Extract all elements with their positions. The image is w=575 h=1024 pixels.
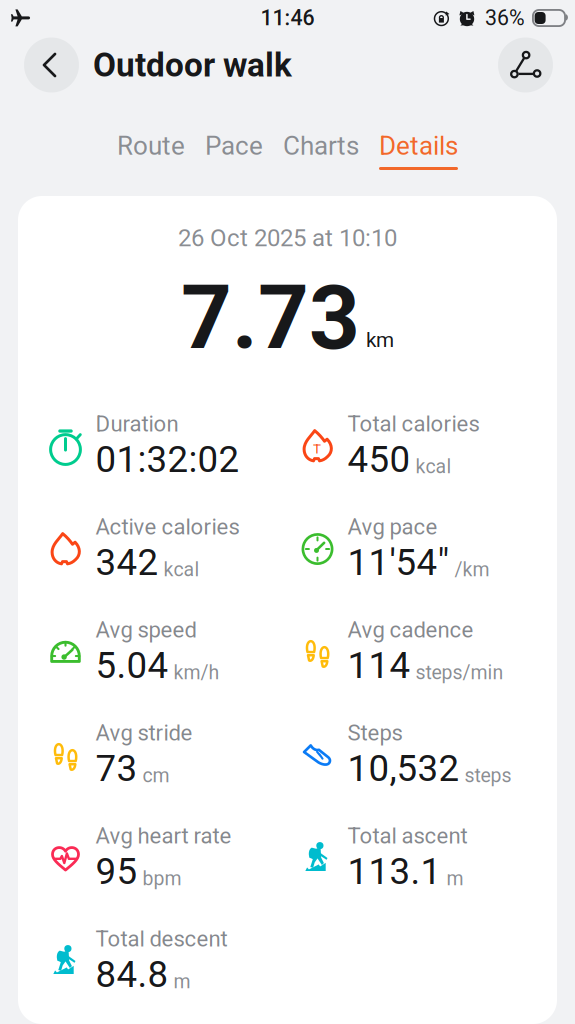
staticText: Steps bbox=[347, 720, 402, 746]
staticText: 7.73 bbox=[181, 266, 360, 370]
staticText: km bbox=[366, 328, 394, 352]
staticText: 95 bbox=[95, 850, 137, 893]
staticText: 113.1 bbox=[347, 850, 441, 893]
staticText: Outdoor walk bbox=[93, 45, 292, 85]
staticText: Total descent bbox=[95, 926, 227, 952]
staticText: steps bbox=[464, 764, 511, 787]
staticText: m bbox=[173, 970, 190, 993]
staticText: km/h bbox=[173, 661, 219, 684]
staticText: Avg stride bbox=[95, 720, 192, 746]
staticText: 5.04 bbox=[95, 644, 168, 687]
staticText: 450 bbox=[347, 438, 410, 481]
staticText: Avg pace bbox=[347, 514, 437, 540]
staticText: /km bbox=[454, 558, 489, 581]
staticText: Charts bbox=[283, 130, 359, 161]
staticText: Total calories bbox=[347, 411, 479, 437]
staticText: Details bbox=[379, 130, 458, 161]
staticText: 11'54" bbox=[347, 541, 449, 584]
button[interactable]: Details bbox=[379, 130, 458, 196]
staticText: Avg speed bbox=[95, 617, 196, 643]
staticText: m bbox=[446, 867, 463, 890]
staticText: Total ascent bbox=[347, 823, 467, 849]
staticText: 10,532 bbox=[347, 747, 459, 790]
button[interactable]: Pace bbox=[205, 130, 263, 196]
staticText: Pace bbox=[205, 130, 263, 161]
staticText: 84.8 bbox=[95, 953, 168, 996]
staticText: steps/min bbox=[415, 661, 503, 684]
button[interactable]: Back bbox=[24, 37, 79, 92]
staticText: 342 bbox=[95, 541, 158, 584]
button[interactable]: Charts bbox=[283, 130, 359, 196]
staticText: Avg cadence bbox=[347, 617, 473, 643]
staticText: 114 bbox=[347, 644, 410, 687]
staticText: Active calories bbox=[95, 514, 239, 540]
staticText: kcal bbox=[163, 558, 199, 581]
staticText: 73 bbox=[95, 747, 137, 790]
staticText: 11:46 bbox=[260, 5, 314, 30]
staticText: cm bbox=[142, 764, 169, 787]
staticText: kcal bbox=[415, 455, 451, 478]
staticText: bpm bbox=[142, 867, 181, 890]
staticText: 01:32:02 bbox=[95, 438, 239, 481]
staticText: Route bbox=[117, 130, 185, 161]
staticText: 36% bbox=[485, 5, 525, 30]
staticText: Avg heart rate bbox=[95, 823, 231, 849]
button[interactable]: Route bbox=[117, 130, 185, 196]
button[interactable]: Share bbox=[498, 37, 553, 92]
staticText: T bbox=[313, 441, 321, 457]
staticText: Duration bbox=[95, 411, 178, 437]
staticText: 26 Oct 2025 at 10:10 bbox=[178, 224, 397, 252]
